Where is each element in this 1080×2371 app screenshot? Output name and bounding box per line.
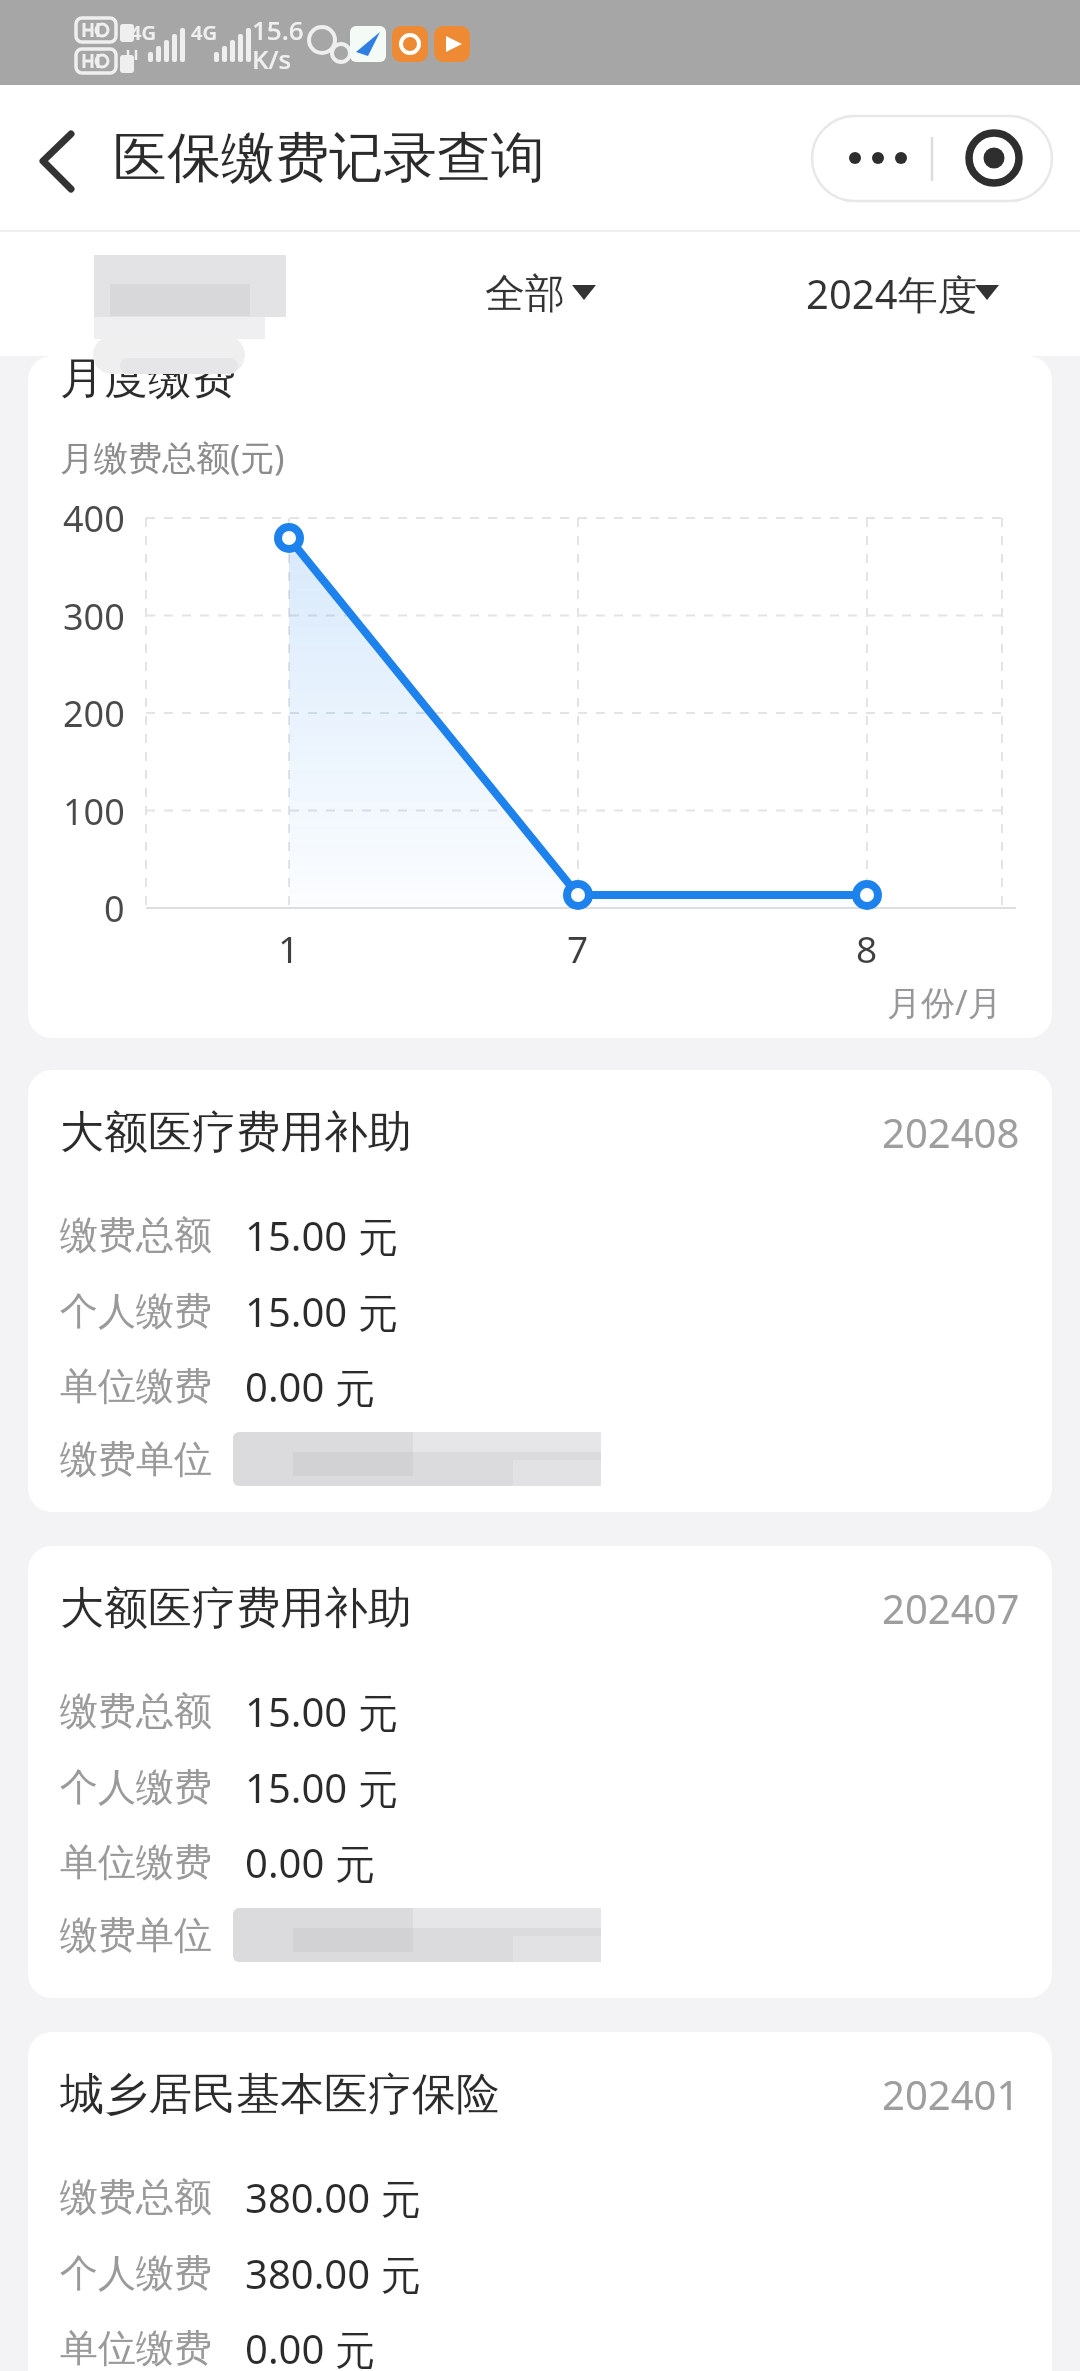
staticText: 1 bbox=[278, 923, 300, 973]
staticText: 月份/月 bbox=[887, 979, 1002, 1025]
staticText: 单位缴费 bbox=[60, 1362, 212, 1410]
button[interactable] bbox=[932, 116, 1052, 201]
staticText: 个人缴费 bbox=[60, 2249, 212, 2297]
button[interactable] bbox=[20, 120, 100, 200]
button[interactable]: 大额医疗费用补助 bbox=[28, 1546, 1052, 1998]
staticText: 15.00 元 bbox=[245, 1208, 398, 1263]
staticText: 城乡居民基本医疗保险 bbox=[60, 2067, 500, 2122]
staticText: 0 bbox=[104, 884, 125, 933]
staticText: 0.00 元 bbox=[245, 2321, 375, 2371]
button[interactable] bbox=[780, 255, 1030, 331]
staticText: 400 bbox=[63, 494, 125, 543]
staticText: 缴费总额 bbox=[60, 1211, 212, 1259]
staticText: 15.00 元 bbox=[245, 1284, 398, 1339]
staticText: 4G bbox=[130, 19, 156, 46]
staticText: 单位缴费 bbox=[60, 1838, 212, 1886]
staticText: 7 bbox=[567, 923, 589, 973]
staticText: 缴费单位 bbox=[60, 1435, 212, 1483]
staticText: 2024年度 bbox=[806, 266, 978, 321]
staticText: 大额医疗费用补助 bbox=[60, 1581, 412, 1636]
staticText: 380.00 元 bbox=[245, 2246, 421, 2301]
staticText: 全部 bbox=[485, 268, 565, 318]
staticText: 100 bbox=[63, 787, 125, 836]
staticText: 0.00 元 bbox=[245, 1835, 375, 1890]
staticText: 202401 bbox=[882, 2067, 1020, 2121]
staticText: 4G bbox=[191, 19, 217, 46]
staticText: 380.00 元 bbox=[245, 2170, 421, 2225]
button[interactable]: 城乡居民基本医疗保险 bbox=[28, 2032, 1052, 2371]
staticText: 个人缴费 bbox=[60, 1763, 212, 1811]
staticText: 202407 bbox=[882, 1581, 1020, 1635]
staticText: 月缴费总额(元) bbox=[60, 434, 285, 480]
button[interactable] bbox=[440, 255, 640, 331]
staticText: K/s bbox=[252, 41, 292, 76]
staticText: 300 bbox=[63, 592, 125, 641]
staticText: 202408 bbox=[882, 1105, 1020, 1159]
staticText: 15.6 bbox=[252, 12, 304, 47]
button[interactable] bbox=[812, 116, 932, 201]
staticText: 月度缴费 bbox=[60, 356, 236, 406]
staticText: 8 bbox=[856, 923, 878, 973]
staticText: 缴费单位 bbox=[60, 1911, 212, 1959]
staticText: 缴费总额 bbox=[60, 1687, 212, 1735]
staticText: 医保缴费记录查询 bbox=[113, 124, 545, 192]
staticText: 15.00 元 bbox=[245, 1760, 398, 1815]
button[interactable]: 大额医疗费用补助 bbox=[28, 1070, 1052, 1512]
staticText: 15.00 元 bbox=[245, 1684, 398, 1739]
staticText: 0.00 元 bbox=[245, 1359, 375, 1414]
staticText: 大额医疗费用补助 bbox=[60, 1105, 412, 1160]
staticText: 200 bbox=[63, 689, 125, 738]
staticText: 缴费总额 bbox=[60, 2173, 212, 2221]
staticText: 个人缴费 bbox=[60, 1287, 212, 1335]
staticText: 单位缴费 bbox=[60, 2324, 212, 2371]
